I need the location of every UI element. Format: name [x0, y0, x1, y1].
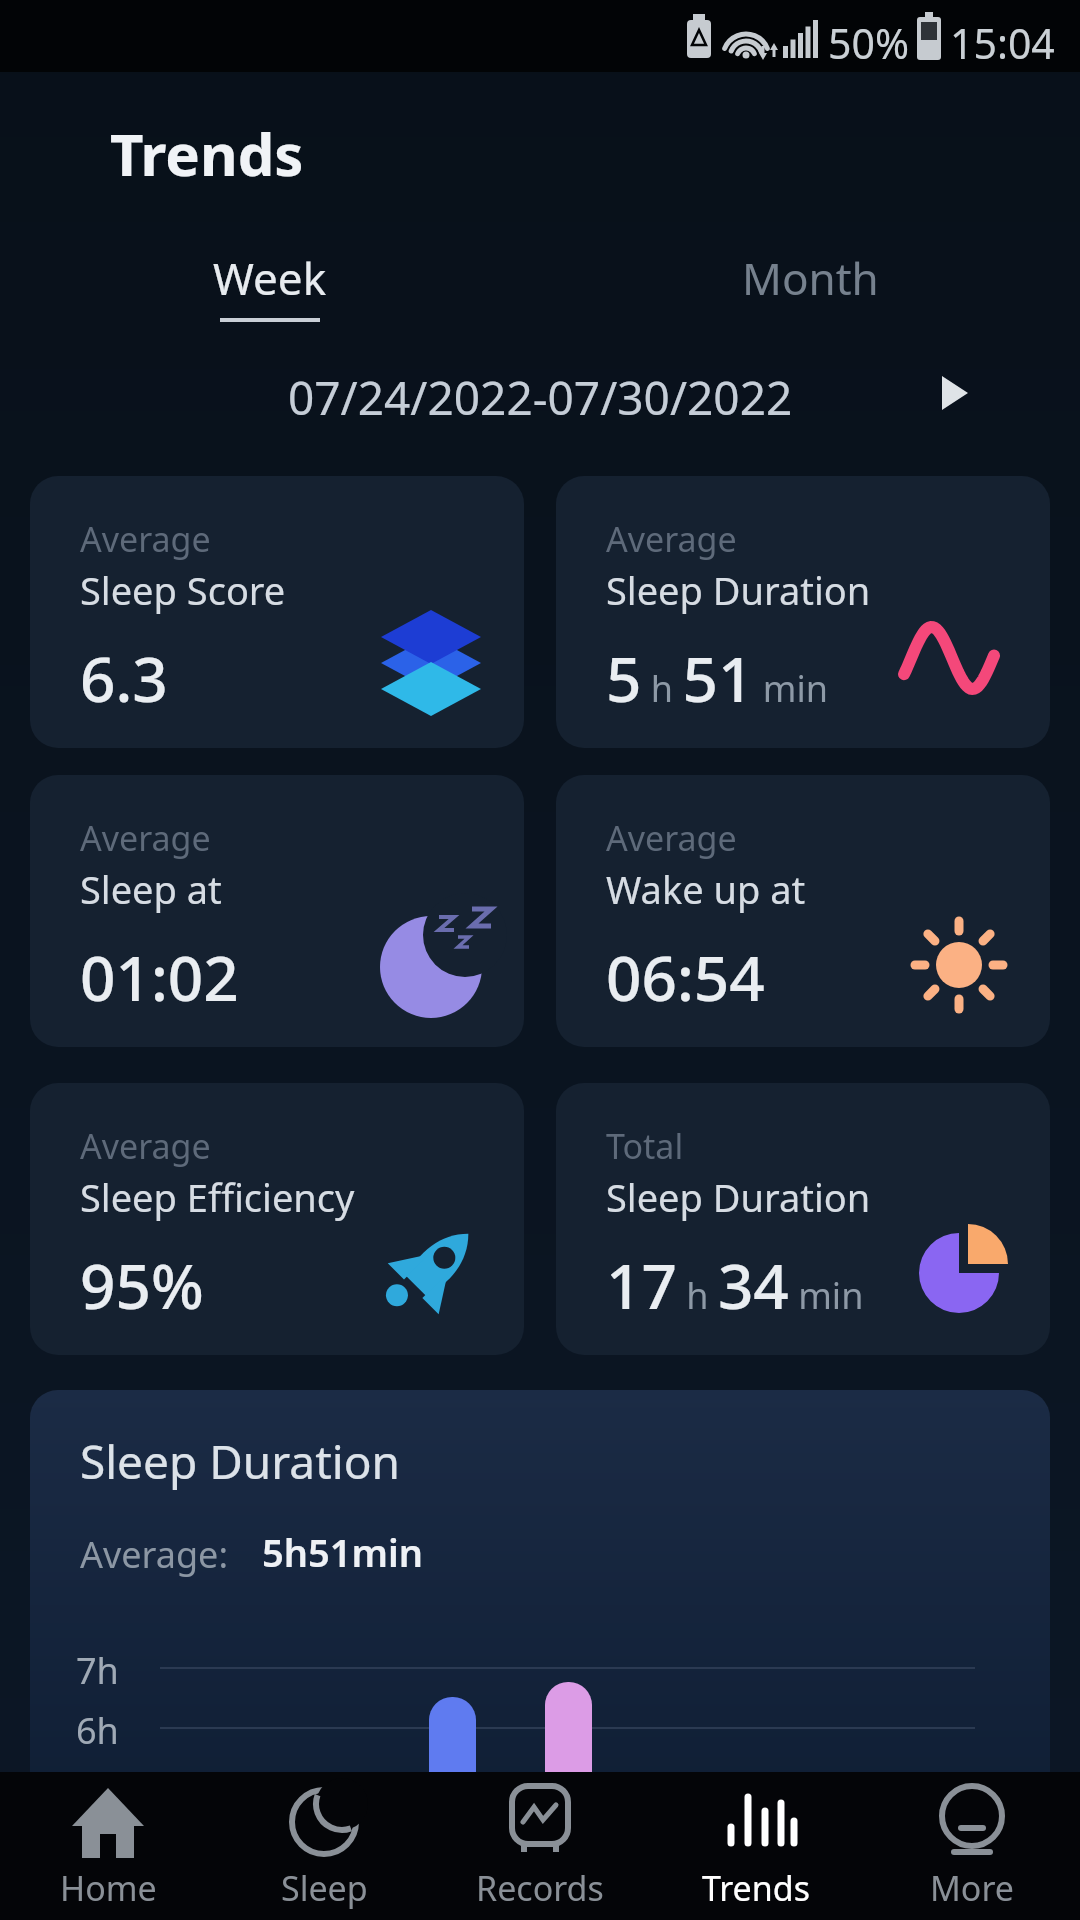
staticText: 6.3 [80, 636, 168, 720]
staticText: 07/24/2022-07/30/2022 [288, 366, 793, 420]
staticText: Average [606, 516, 737, 562]
staticText: Average: [80, 1530, 229, 1579]
staticText: More [930, 1865, 1014, 1911]
staticText: Sleep Duration [606, 1171, 871, 1223]
staticText: Sleep Score [80, 564, 286, 616]
button[interactable]: Sleep Duration [30, 1390, 1050, 1820]
button[interactable]: Average [30, 775, 524, 1047]
staticText: Average [80, 516, 211, 562]
button[interactable]: Average [30, 476, 524, 748]
staticText: Week [213, 248, 327, 306]
staticText: 6h [76, 1706, 119, 1755]
button[interactable]: Average [556, 476, 1050, 748]
button[interactable]: Sleep [216, 1772, 432, 1920]
button[interactable]: Average [556, 775, 1050, 1047]
staticText: 06:54 [606, 935, 765, 1019]
staticText: Month [742, 248, 879, 306]
staticText: Sleep Duration [80, 1430, 400, 1493]
button[interactable]: Records [432, 1772, 648, 1920]
button[interactable]: More [864, 1772, 1080, 1920]
staticText: Trends [110, 114, 304, 193]
button[interactable]: Trends [648, 1772, 864, 1920]
staticText: Average [80, 815, 211, 861]
button[interactable]: Month [540, 248, 1080, 306]
staticText: Records [476, 1865, 604, 1911]
staticText: Wake up at [606, 863, 806, 915]
staticText: Sleep [281, 1865, 368, 1911]
staticText: 50% [828, 15, 909, 71]
staticText: Trends [702, 1865, 810, 1911]
button[interactable]: Total [556, 1083, 1050, 1355]
staticText: 17 h 34 min [606, 1243, 864, 1327]
staticText: Total [606, 1123, 684, 1169]
button[interactable]: Average [30, 1083, 524, 1355]
staticText: 15:04 [950, 15, 1055, 71]
staticText: Sleep Efficiency [80, 1171, 355, 1223]
button[interactable]: Week [0, 248, 540, 306]
staticText: 01:02 [80, 935, 239, 1019]
staticText: Average [80, 1123, 211, 1169]
button[interactable]: Home [0, 1772, 216, 1920]
staticText: Sleep at [80, 863, 222, 915]
staticText: Sleep Duration [606, 564, 871, 616]
staticText: Home [60, 1865, 157, 1911]
button[interactable]: 07/24/2022-07/30/2022 [0, 366, 1080, 420]
staticText: 95% [80, 1243, 204, 1327]
staticText: 5 h 51 min [606, 636, 828, 720]
staticText: 5h51min [262, 1526, 423, 1578]
staticText: 7h [76, 1646, 119, 1695]
staticText: Average [606, 815, 737, 861]
